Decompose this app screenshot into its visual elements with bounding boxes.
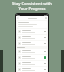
button[interactable]: Back <box>17 17 19 19</box>
button[interactable] <box>17 67 47 72</box>
staticText: Your Progress <box>18 6 46 11</box>
staticText: Stay Consistent with <box>12 1 52 6</box>
button[interactable] <box>17 29 47 34</box>
button[interactable] <box>17 21 47 28</box>
button[interactable]: Progress indicator <box>44 56 46 59</box>
button[interactable] <box>17 49 47 54</box>
button[interactable] <box>17 61 47 66</box>
button[interactable]: Progress indicator <box>17 55 47 60</box>
button[interactable] <box>17 41 47 46</box>
button[interactable] <box>17 35 47 40</box>
